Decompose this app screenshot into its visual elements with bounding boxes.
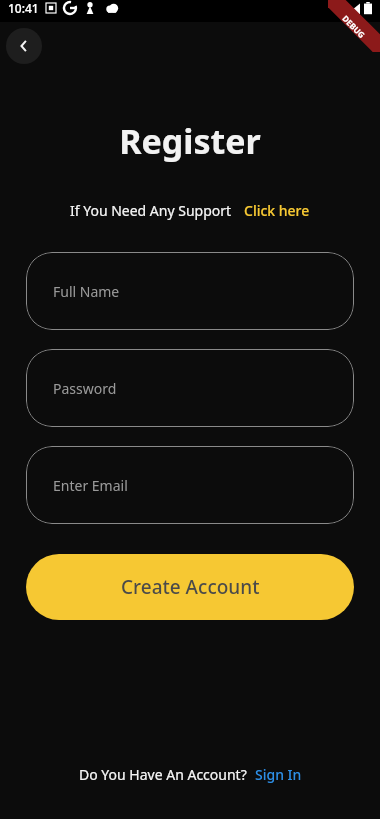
button[interactable]: Sign In — [255, 765, 302, 784]
staticText: DEBUG — [340, 13, 368, 40]
staticText: If You Need Any Support — [70, 201, 232, 220]
staticText: Do You Have An Account? — [79, 765, 247, 784]
button[interactable]: Password — [26, 349, 354, 427]
button[interactable]: Enter Email — [26, 446, 354, 524]
button[interactable]: Click here — [244, 201, 310, 220]
staticText: Click here — [244, 201, 310, 220]
staticText: Register — [119, 118, 261, 164]
staticText: Enter Email — [53, 476, 128, 495]
staticText: 10:41 — [8, 0, 39, 16]
staticText: Sign In — [255, 765, 302, 784]
staticText: Create Account — [121, 574, 260, 600]
staticText: Full Name — [53, 282, 120, 301]
button[interactable]: Full Name — [26, 252, 354, 330]
button[interactable]: Create Account — [26, 554, 354, 620]
staticText: Password — [53, 379, 117, 398]
button[interactable]: Back — [6, 28, 42, 64]
